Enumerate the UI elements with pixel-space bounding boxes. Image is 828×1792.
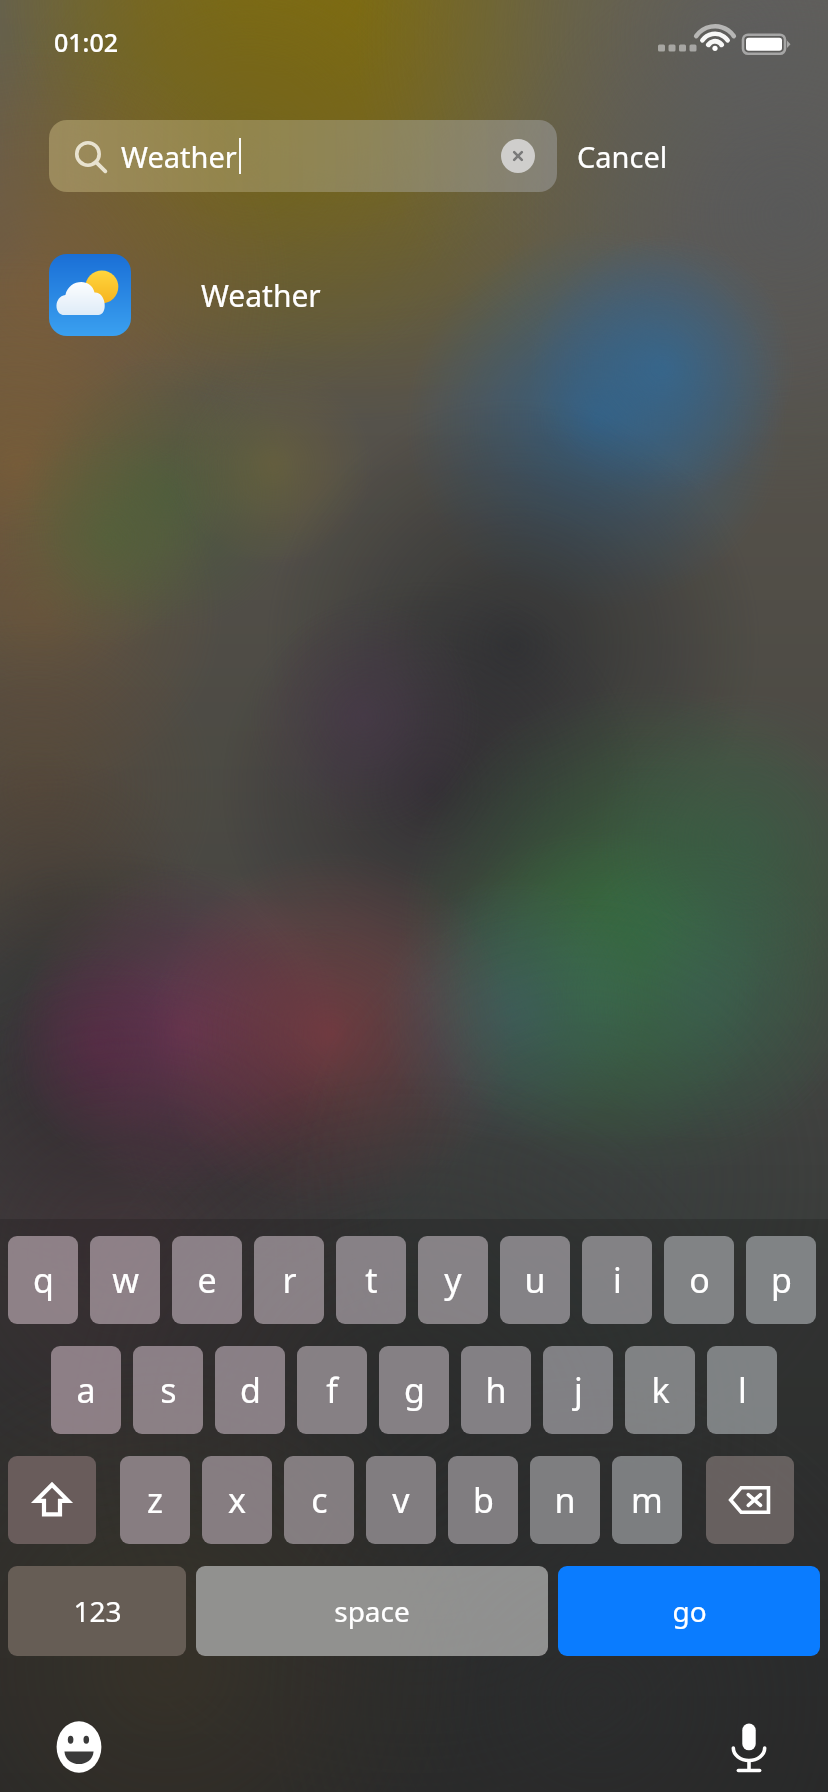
button[interactable]: d xyxy=(215,1346,285,1434)
button[interactable]: r xyxy=(254,1236,324,1324)
button[interactable]: g xyxy=(379,1346,449,1434)
staticText: go xyxy=(672,1592,707,1630)
staticText: Weather xyxy=(121,137,237,176)
button[interactable]: Clear text xyxy=(501,139,535,173)
button[interactable]: Emoji keyboard xyxy=(46,1714,112,1780)
button[interactable]: Backspace xyxy=(706,1456,794,1544)
button[interactable]: c xyxy=(284,1456,354,1544)
staticText: f xyxy=(326,1367,338,1413)
button[interactable]: a xyxy=(51,1346,121,1434)
staticText: h xyxy=(485,1367,507,1413)
button[interactable]: s xyxy=(133,1346,203,1434)
staticText: Weather xyxy=(201,275,321,316)
button[interactable]: o xyxy=(664,1236,734,1324)
staticText: e xyxy=(197,1257,217,1303)
button[interactable]: b xyxy=(448,1456,518,1544)
staticText: j xyxy=(574,1367,583,1413)
button[interactable]: m xyxy=(612,1456,682,1544)
staticText: Cancel xyxy=(577,137,668,176)
staticText: l xyxy=(738,1367,747,1413)
button[interactable]: Cancel xyxy=(577,120,668,192)
staticText: z xyxy=(147,1477,163,1523)
button[interactable]: j xyxy=(543,1346,613,1434)
staticText: 01:02 xyxy=(54,25,119,59)
staticText: a xyxy=(76,1367,96,1413)
button[interactable]: p xyxy=(746,1236,816,1324)
button[interactable]: h xyxy=(461,1346,531,1434)
staticText: 123 xyxy=(73,1592,122,1630)
staticText: p xyxy=(771,1257,792,1303)
staticText: x xyxy=(228,1477,246,1523)
staticText: space xyxy=(334,1592,410,1630)
staticText: u xyxy=(524,1257,546,1303)
button[interactable]: i xyxy=(582,1236,652,1324)
button[interactable]: 123 xyxy=(8,1566,186,1656)
button[interactable]: f xyxy=(297,1346,367,1434)
button[interactable]: go xyxy=(558,1566,820,1656)
button[interactable]: y xyxy=(418,1236,488,1324)
staticText: s xyxy=(160,1367,177,1413)
staticText: t xyxy=(365,1257,378,1303)
button[interactable]: Weather xyxy=(0,240,828,350)
staticText: r xyxy=(282,1257,297,1303)
button[interactable]: Weather xyxy=(49,120,557,192)
button[interactable]: l xyxy=(707,1346,777,1434)
button[interactable]: v xyxy=(366,1456,436,1544)
staticText: b xyxy=(473,1477,494,1523)
staticText: c xyxy=(311,1477,328,1523)
button[interactable]: t xyxy=(336,1236,406,1324)
button[interactable]: w xyxy=(90,1236,160,1324)
staticText: i xyxy=(613,1257,622,1303)
staticText: v xyxy=(392,1477,410,1523)
staticText: y xyxy=(444,1257,462,1303)
staticText: g xyxy=(404,1367,425,1413)
button[interactable]: n xyxy=(530,1456,600,1544)
button[interactable]: x xyxy=(202,1456,272,1544)
staticText: o xyxy=(689,1257,710,1303)
staticText: m xyxy=(631,1477,663,1523)
staticText: k xyxy=(651,1367,670,1413)
staticText: n xyxy=(554,1477,576,1523)
staticText: q xyxy=(33,1257,54,1303)
button[interactable]: Shift xyxy=(8,1456,96,1544)
button[interactable]: Dictation xyxy=(716,1714,782,1780)
button[interactable]: space xyxy=(196,1566,548,1656)
button[interactable]: e xyxy=(172,1236,242,1324)
button[interactable]: z xyxy=(120,1456,190,1544)
button[interactable]: u xyxy=(500,1236,570,1324)
button[interactable]: q xyxy=(8,1236,78,1324)
button[interactable]: k xyxy=(625,1346,695,1434)
staticText: w xyxy=(112,1257,139,1303)
staticText: d xyxy=(240,1367,261,1413)
